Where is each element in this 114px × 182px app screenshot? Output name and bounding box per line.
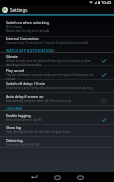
staticText: Settings <box>10 7 28 13</box>
button[interactable]: Auto delay if screen on <box>0 94 114 107</box>
staticText: Mobile data: During active periods <box>6 29 50 33</box>
staticText: Switch on when unlocking <box>6 20 49 25</box>
button[interactable]: Switch on when unlocking <box>0 20 114 33</box>
staticText: Switch off delay: 10 min <box>6 81 45 86</box>
staticText: 10:43 <box>101 0 112 5</box>
button[interactable]: Internal Connection <box>0 36 114 49</box>
button[interactable]: Play sound <box>0 68 114 81</box>
staticText: Open the log file with the text editor o… <box>6 130 71 134</box>
staticText: Delete the log file (517 KB) <box>6 143 40 147</box>
staticText: Automatically delay the switch off if th… <box>6 99 72 103</box>
staticText: watching a full screen video <box>6 63 42 67</box>
staticText: Connect every 15 minutes for 1 minute (i… <box>6 41 88 45</box>
staticText: LOGGING <box>6 106 23 110</box>
staticText: Play sound <box>6 68 24 73</box>
button[interactable]: Delete log <box>0 138 114 151</box>
staticText: WATCH APP NOTIFICATIONS <box>6 48 55 52</box>
staticText: Wi-Fi: always <box>6 25 23 29</box>
button[interactable]: Vibrate <box>0 54 114 67</box>
button[interactable]: Show log <box>0 125 114 138</box>
button[interactable]: Back <box>27 172 41 182</box>
staticText: Write all sensors to a log file <box>6 118 42 122</box>
button[interactable]: Recent apps <box>73 172 87 182</box>
button[interactable]: Enable logging <box>0 113 114 126</box>
staticText: Play the notification sound to make sure… <box>6 73 94 77</box>
staticText: Delete log <box>6 138 23 143</box>
staticText: Auto delay if screen on <box>6 94 44 99</box>
button[interactable]: Settings <box>0 5 114 14</box>
staticText: Vibrate to make sure the switch off warn… <box>6 59 92 63</box>
staticText: Vibrate <box>6 54 18 59</box>
staticText: missed <box>6 77 15 81</box>
staticText: Deactivation can be delayed by this time… <box>6 86 93 90</box>
button[interactable]: Switch off delay: 10 min <box>0 81 114 94</box>
button[interactable]: Home <box>50 172 64 182</box>
staticText: Show log <box>6 125 21 130</box>
staticText: Enable logging <box>6 113 31 118</box>
staticText: Internal Connection <box>6 36 39 41</box>
